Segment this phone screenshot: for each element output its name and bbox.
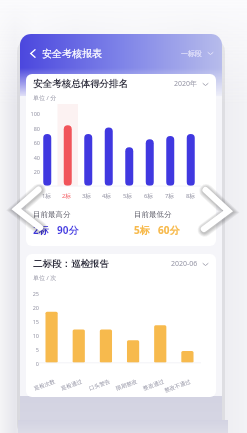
staticText: 单位 / 分 bbox=[33, 94, 57, 102]
staticText: 15 bbox=[29, 318, 39, 325]
staticText: 安全考核总体得分排名 bbox=[33, 78, 128, 90]
staticText: 0 bbox=[29, 360, 39, 367]
staticText: 5标 bbox=[123, 192, 133, 200]
staticText: 20 bbox=[28, 168, 40, 175]
staticText: 2020-06 bbox=[171, 259, 198, 269]
staticText: 目前最高分 bbox=[33, 210, 71, 219]
staticText: 限期整改 bbox=[115, 378, 138, 392]
staticText: 3标 bbox=[82, 192, 92, 200]
staticText: 安全考核报表 bbox=[42, 47, 102, 60]
staticText: 整改不通过 bbox=[163, 378, 192, 394]
staticText: 80 bbox=[28, 125, 40, 132]
staticText: 40 bbox=[28, 154, 40, 161]
staticText: 2020年 bbox=[174, 79, 198, 89]
button[interactable]: 2020年 bbox=[173, 78, 209, 90]
staticText: 100 bbox=[28, 110, 40, 117]
staticText: 口头警告 bbox=[88, 378, 111, 392]
staticText: 5 bbox=[29, 346, 39, 353]
staticText: 25 bbox=[29, 290, 39, 297]
staticText: 10 bbox=[29, 332, 39, 339]
staticText: 巡检通过 bbox=[60, 378, 83, 392]
staticText: 目前最低分 bbox=[134, 210, 172, 219]
button[interactable]: 2020-06 bbox=[170, 258, 209, 270]
staticText: 4标 bbox=[102, 192, 112, 200]
staticText: 二标段：巡检报告 bbox=[33, 258, 109, 270]
staticText: 2标 bbox=[33, 223, 49, 237]
staticText: 60分 bbox=[158, 223, 180, 237]
staticText: 一标段 bbox=[181, 49, 202, 58]
staticText: 60 bbox=[28, 139, 40, 146]
staticText: 1标 bbox=[42, 192, 52, 200]
staticText: 2标 bbox=[62, 192, 72, 200]
button[interactable]: Previous bbox=[12, 185, 44, 233]
staticText: 90分 bbox=[57, 223, 79, 237]
button[interactable]: Back bbox=[25, 46, 39, 60]
staticText: 巡检次数 bbox=[33, 378, 56, 392]
staticText: 6标 bbox=[144, 192, 154, 200]
staticText: 单位 / 次 bbox=[33, 274, 57, 282]
staticText: 7标 bbox=[165, 192, 175, 200]
staticText: 8标 bbox=[186, 192, 196, 200]
button[interactable]: Next bbox=[199, 185, 231, 233]
staticText: 5标 bbox=[134, 223, 150, 237]
staticText: 20 bbox=[29, 304, 39, 311]
button[interactable]: 一标段 bbox=[179, 47, 215, 60]
staticText: 整改通过 bbox=[142, 378, 165, 392]
